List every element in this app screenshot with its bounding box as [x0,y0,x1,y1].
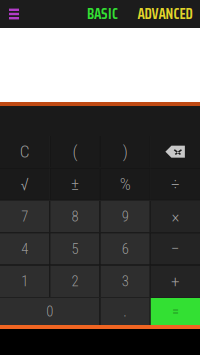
staticText: ± [71,174,79,194]
staticText: C [20,141,30,162]
button[interactable]: ( [50,136,99,167]
button[interactable]: C [0,136,49,167]
button[interactable]: = [151,298,200,325]
staticText: × [171,206,179,227]
staticText: % [120,174,131,194]
button[interactable]: × [151,201,200,232]
button[interactable]: 6 [100,233,150,265]
staticText: . [123,303,127,320]
staticText: √ [21,174,29,194]
button[interactable]: 8 [50,201,99,232]
button[interactable]: √ [0,168,49,200]
staticText: = [172,303,179,320]
staticText: 8 [71,208,78,225]
button[interactable]: ) [100,136,150,167]
button[interactable]: ADVANCED [130,0,200,28]
staticText: 0 [46,303,53,320]
staticText: 7 [21,208,28,225]
button[interactable]: 2 [50,266,99,297]
button[interactable]: BASIC [75,0,130,28]
staticText: 4 [21,240,28,257]
button[interactable]: 1 [0,266,49,297]
button[interactable]: 7 [0,201,49,232]
staticText: − [171,239,180,259]
staticText: + [171,271,180,291]
button[interactable]: Delete [151,136,200,167]
staticText: 9 [122,208,129,225]
staticText: ( [72,141,77,162]
button[interactable]: − [151,233,200,265]
staticText: 6 [122,240,129,257]
button[interactable]: 3 [100,266,150,297]
staticText: ADVANCED [137,2,192,26]
staticText: ÷ [171,174,180,194]
button[interactable]: ÷ [151,168,200,200]
staticText: 1 [21,273,28,290]
button[interactable]: . [100,298,150,325]
button[interactable]: + [151,266,200,297]
button[interactable]: % [100,168,150,200]
staticText: BASIC [87,2,118,26]
button[interactable]: 4 [0,233,49,265]
staticText: 2 [71,273,78,290]
button[interactable]: Menu [0,0,28,28]
button[interactable]: 0 [0,298,99,325]
button[interactable]: 5 [50,233,99,265]
button[interactable]: ± [50,168,99,200]
staticText: 5 [71,240,78,257]
staticText: 3 [122,273,129,290]
button[interactable]: 9 [100,201,150,232]
staticText: ) [123,141,128,162]
